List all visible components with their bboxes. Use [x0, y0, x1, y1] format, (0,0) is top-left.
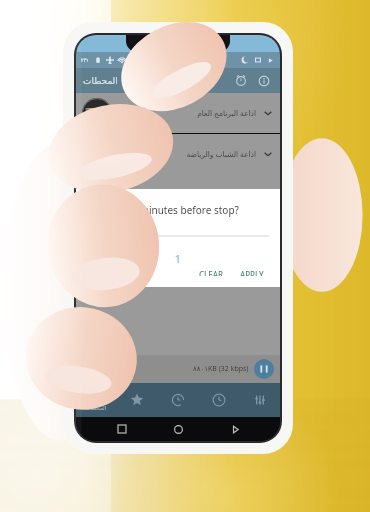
button[interactable]: Stations — [76, 383, 116, 417]
button[interactable]: Minutes slider — [87, 231, 269, 241]
button[interactable]: السعودية — [76, 355, 280, 383]
button[interactable]: Sleep timer — [232, 72, 250, 90]
button[interactable]: Favourites — [116, 383, 157, 417]
button[interactable]: Home — [167, 418, 189, 440]
staticText: ٣٢ kbps — [120, 108, 149, 119]
button[interactable]: CLEAR — [194, 266, 229, 279]
staticText: How many minutes before stop? — [87, 203, 239, 217]
button[interactable]: APPLY — [235, 266, 269, 279]
button[interactable]: Timer — [198, 383, 239, 417]
staticText: ٨٨٠١KB (32 kbps) — [193, 364, 249, 374]
staticText: المحطات — [83, 76, 118, 86]
staticText: 1 — [87, 251, 269, 266]
button[interactable]: ٣٢ kbps — [76, 134, 280, 174]
staticText: اذاعة البرنامج العام — [197, 108, 256, 118]
button[interactable]: Pause — [254, 359, 274, 379]
staticText: CLEAR — [199, 269, 224, 276]
staticText: المحطات — [85, 405, 107, 411]
button[interactable]: History — [157, 383, 198, 417]
button[interactable]: Equalizer — [239, 383, 280, 417]
button[interactable]: ٣٢ kbps — [76, 93, 280, 133]
staticText: السعودية — [105, 365, 132, 373]
staticText: ٢٣١ — [81, 57, 90, 63]
button[interactable]: Info — [255, 72, 273, 90]
staticText: APPLY — [240, 269, 264, 276]
staticText: اذاعة الشباب والرياضة — [186, 149, 256, 159]
staticText: ٣٢ kbps — [120, 149, 149, 160]
button[interactable]: Recents — [111, 418, 133, 440]
button[interactable]: Back — [224, 418, 246, 440]
